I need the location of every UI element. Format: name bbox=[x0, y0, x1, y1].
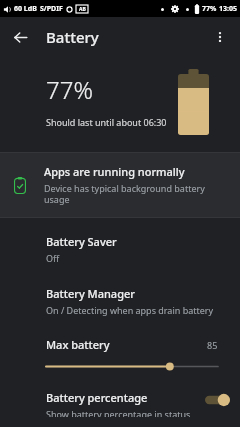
button[interactable]: Max battery bbox=[0, 327, 240, 380]
staticText: Device has typical background battery us… bbox=[44, 182, 228, 206]
staticText: Max battery bbox=[46, 337, 110, 352]
staticText: 60 LdB bbox=[14, 4, 37, 14]
staticText: S/PDIF bbox=[40, 4, 63, 14]
button[interactable]: Battery Saver bbox=[0, 223, 240, 275]
staticText: 77% bbox=[46, 73, 93, 106]
staticText: 13:05 bbox=[219, 4, 237, 14]
staticText: Battery Saver bbox=[46, 234, 117, 249]
staticText: AB bbox=[79, 6, 86, 13]
staticText: Apps are running normally bbox=[44, 164, 185, 179]
staticText: 77% bbox=[202, 4, 217, 14]
button[interactable]: Battery Manager bbox=[0, 275, 240, 327]
staticText: Should last until about 06:30 bbox=[46, 116, 167, 128]
staticText: Battery Manager bbox=[46, 286, 135, 301]
staticText: On / Detecting when apps drain battery bbox=[46, 304, 214, 316]
button[interactable]: Back bbox=[5, 22, 35, 52]
staticText: Battery percentage bbox=[46, 390, 148, 405]
button[interactable]: More options bbox=[205, 22, 235, 52]
staticText: Show battery percentage in status bar bbox=[46, 408, 193, 417]
button[interactable]: Battery percentage bbox=[0, 380, 240, 427]
staticText: Battery bbox=[46, 27, 99, 47]
button[interactable]: Apps are running normally bbox=[0, 153, 240, 217]
staticText: Off bbox=[46, 252, 60, 264]
staticText: 85 bbox=[207, 339, 218, 351]
